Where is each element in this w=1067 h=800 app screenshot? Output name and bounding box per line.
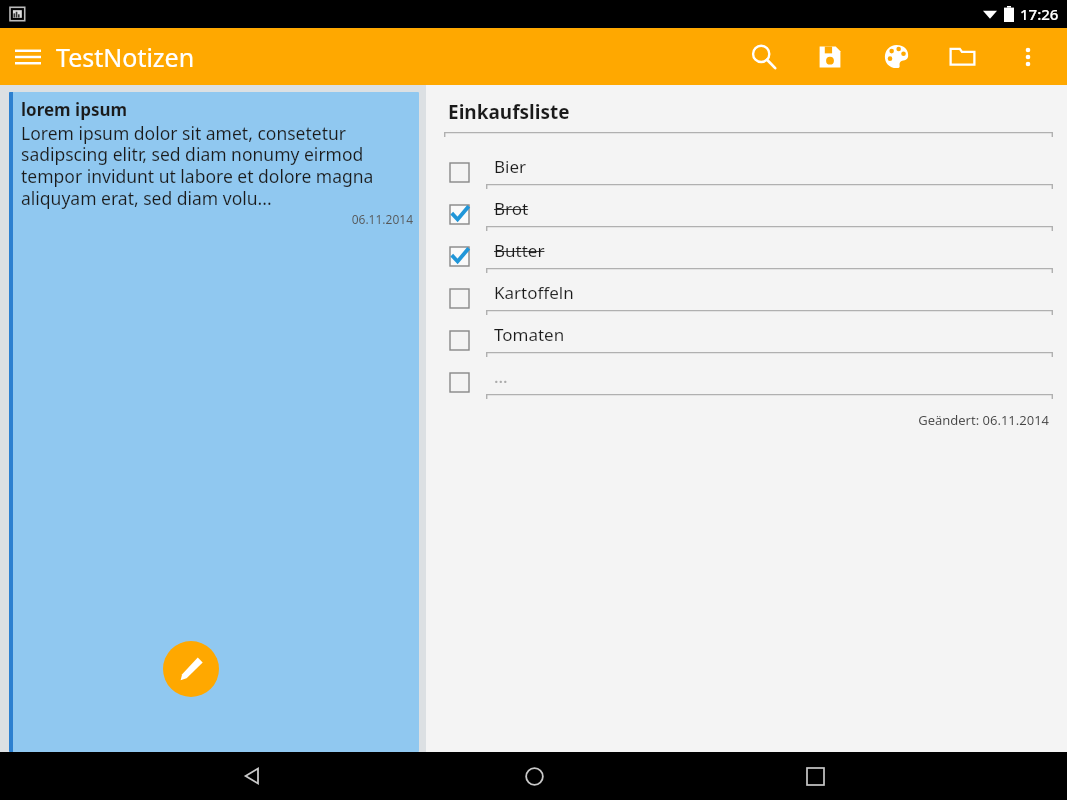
staticText: Butter (494, 239, 545, 262)
staticText: Lorem ipsum dolor sit amet, consetetur s… (21, 121, 413, 210)
button[interactable]: Folder (929, 28, 995, 85)
other: Toggle Butter (444, 241, 474, 271)
staticText: Brot (494, 197, 529, 220)
other: Toggle Kartoffeln (444, 283, 474, 313)
other: Toggle Tomaten (444, 325, 474, 355)
staticText: lorem ipsum (21, 98, 128, 121)
staticText: Bier (494, 155, 527, 178)
staticText: ... (494, 365, 508, 388)
button[interactable]: Toggle Kartoffeln (444, 277, 1053, 319)
button[interactable]: Home (504, 752, 564, 800)
button[interactable]: More options (995, 28, 1061, 85)
button[interactable]: Open navigation drawer (0, 29, 56, 85)
button[interactable]: Toggle Tomaten (444, 319, 1053, 361)
button[interactable]: Save (797, 28, 863, 85)
button[interactable]: New note (163, 641, 219, 697)
other: Toggle Brot (444, 199, 474, 229)
staticText: Kartoffeln (494, 281, 574, 304)
staticText: TestNotizen (56, 40, 195, 74)
staticText: Geändert: 06.11.2014 (444, 411, 1049, 429)
button[interactable]: Toggle ... (444, 361, 1053, 403)
button[interactable]: lorem ipsum (9, 92, 419, 752)
staticText: Einkaufsliste (448, 99, 570, 125)
button[interactable]: Toggle Butter (444, 235, 1053, 277)
button[interactable]: Color palette (863, 28, 929, 85)
staticText: 17:26 (1020, 4, 1059, 24)
button[interactable]: Toggle Bier (444, 151, 1053, 193)
button[interactable]: Recent apps (785, 752, 845, 800)
button[interactable]: Toggle Brot (444, 193, 1053, 235)
button[interactable]: Back (222, 752, 282, 800)
button[interactable]: Search (731, 28, 797, 85)
other: Toggle Bier (444, 157, 474, 187)
staticText: Tomaten (494, 323, 565, 346)
other: Toggle ... (444, 367, 474, 397)
staticText: 06.11.2014 (21, 211, 413, 227)
